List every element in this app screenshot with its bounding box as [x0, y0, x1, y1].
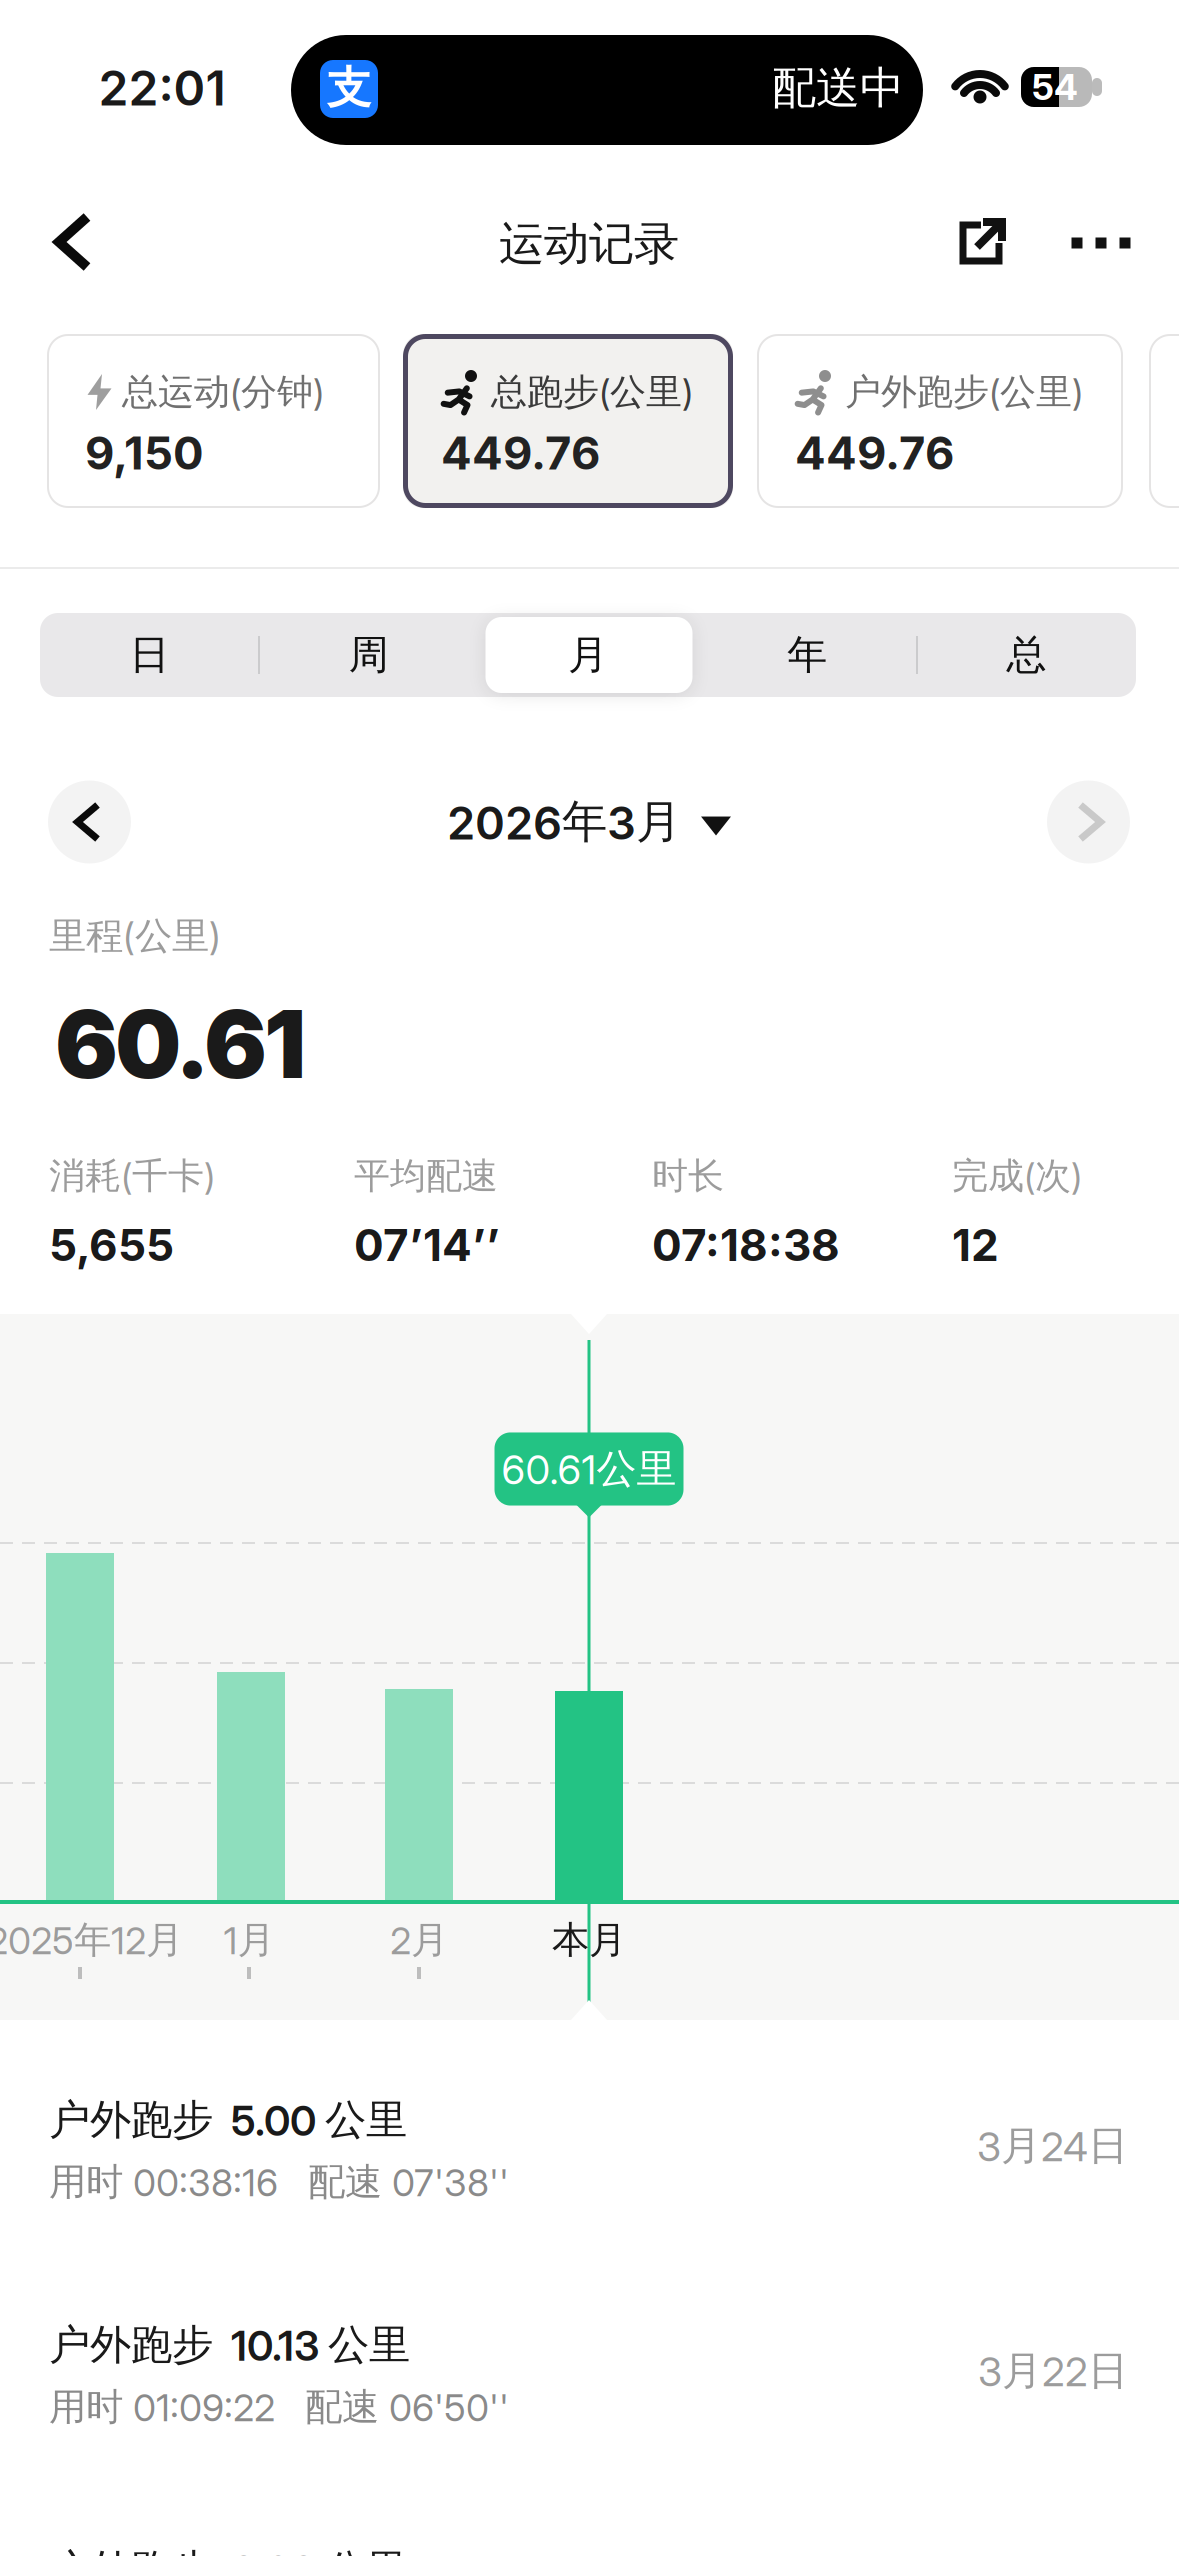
staticText: 3月24日	[977, 2121, 1128, 2170]
staticText: 2026年3月	[447, 794, 681, 850]
staticText: 户外跑步(公里)	[845, 370, 1083, 414]
button[interactable]: 总跑步(公里)	[403, 334, 733, 508]
button[interactable]: 总骑行	[1149, 334, 1179, 508]
button[interactable]: 户外跑步(公里)	[757, 334, 1123, 508]
staticText: 配送中	[772, 61, 904, 115]
staticText: 消耗(千卡)	[49, 1154, 215, 1198]
button[interactable]: 月	[488, 615, 688, 695]
staticText: 总	[1006, 630, 1046, 679]
staticText: 60.61公里	[501, 1444, 676, 1493]
staticText: 完成(次)	[952, 1154, 1082, 1198]
staticText: 支	[327, 61, 371, 115]
staticText: 日	[130, 630, 170, 679]
staticText: 周	[349, 630, 389, 679]
button[interactable]: Previous month	[48, 780, 131, 863]
button[interactable]: Next month	[1047, 780, 1130, 863]
button[interactable]: 户外跑步 3.08 公里	[0, 2543, 1179, 2556]
staticText: 本月	[552, 1917, 626, 1963]
staticText: 户外跑步 3.08 公里	[49, 2545, 407, 2556]
staticText: 运动记录	[499, 216, 679, 272]
staticText: 12	[952, 1219, 999, 1271]
staticText: 平均配速	[354, 1154, 498, 1198]
button[interactable]: 总运动(分钟)	[47, 334, 380, 508]
staticText: 户外跑步 10.13 公里	[49, 2320, 410, 2370]
button[interactable]: 日	[50, 615, 250, 695]
staticText: 07:18:38	[652, 1219, 840, 1271]
staticText: 年	[787, 630, 827, 679]
staticText: 时长	[652, 1154, 724, 1198]
staticText: 用时 01:09:22 配速 06'50''	[49, 2384, 509, 2430]
staticText: 2025年12月	[0, 1917, 183, 1963]
button[interactable]: 年	[707, 615, 907, 695]
button[interactable]: 周	[269, 615, 469, 695]
staticText: 2月	[390, 1917, 448, 1963]
button[interactable]: 户外跑步 10.13 公里	[0, 2318, 1179, 2498]
button[interactable]: Back	[43, 209, 103, 275]
staticText: 总运动(分钟)	[122, 370, 324, 414]
staticText: 449.76	[795, 426, 954, 480]
staticText: 54	[1032, 66, 1078, 108]
staticText: 22:01	[98, 60, 225, 116]
staticText: 449.76	[441, 426, 600, 480]
staticText: 60.61	[55, 989, 306, 1099]
button[interactable]: More	[1065, 219, 1136, 266]
button[interactable]: 户外跑步 5.00 公里	[0, 2093, 1179, 2273]
staticText: 用时 00:38:16 配速 07'38''	[49, 2159, 509, 2205]
staticText: 5,655	[49, 1219, 174, 1271]
button[interactable]: Share	[949, 211, 1013, 275]
staticText: 3月22日	[978, 2346, 1128, 2395]
button[interactable]: 2026年3月	[447, 794, 731, 850]
staticText: 月	[568, 630, 608, 679]
staticText: 总跑步(公里)	[491, 370, 693, 414]
staticText: 1月	[223, 1917, 274, 1963]
staticText: 07’14’’	[354, 1219, 500, 1271]
staticText: 9,150	[85, 426, 204, 480]
button[interactable]: 总	[926, 615, 1126, 695]
staticText: 里程(公里)	[49, 913, 221, 959]
staticText: 户外跑步 5.00 公里	[49, 2095, 407, 2145]
